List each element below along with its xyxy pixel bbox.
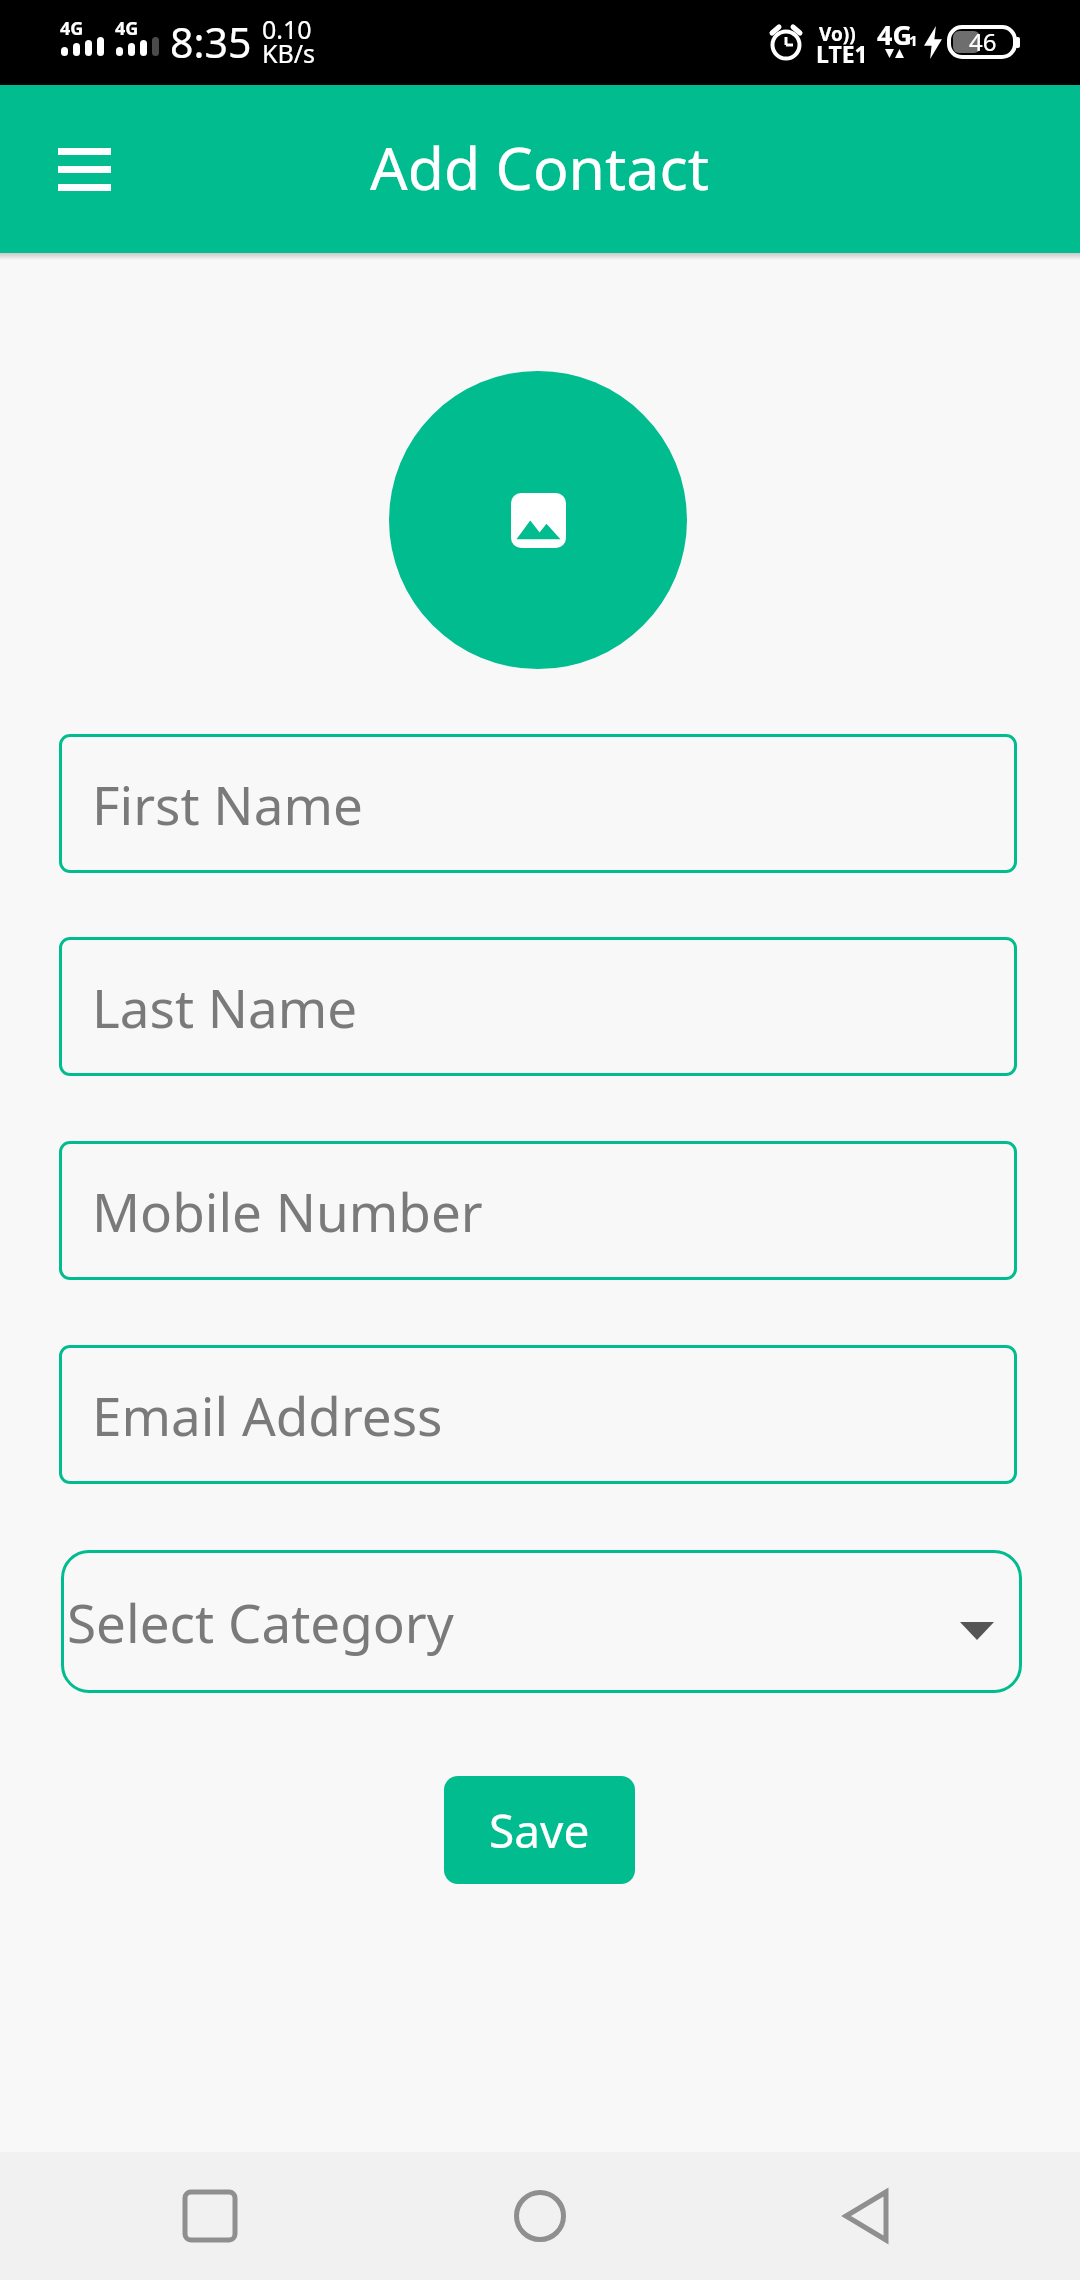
button[interactable]	[160, 2166, 260, 2266]
staticText: Mobile Number	[92, 1175, 483, 1247]
staticText: 46	[969, 25, 997, 58]
button[interactable]: First Name	[59, 734, 1017, 873]
button[interactable]: Email Address	[59, 1345, 1017, 1484]
staticText: First Name	[92, 768, 363, 840]
staticText: Vo))	[819, 21, 856, 47]
button[interactable]: Select Category	[61, 1550, 1022, 1693]
button[interactable]: Save	[444, 1776, 635, 1884]
button[interactable]	[815, 2166, 915, 2266]
staticText: 4G	[60, 16, 84, 41]
button[interactable]	[389, 371, 687, 669]
staticText: Add Contact	[370, 127, 710, 207]
staticText: LTE1	[816, 38, 868, 69]
staticText: Save	[489, 1799, 590, 1862]
staticText: Select Category	[67, 1586, 454, 1658]
staticText: 4G	[877, 16, 912, 53]
button[interactable]	[45, 134, 123, 204]
button[interactable]: Last Name	[59, 937, 1017, 1076]
button[interactable]	[490, 2166, 590, 2266]
staticText: 1	[909, 30, 918, 50]
staticText: 8:35	[170, 14, 252, 70]
staticText: KB/s	[262, 36, 316, 70]
staticText: Email Address	[92, 1379, 443, 1451]
button[interactable]: Mobile Number	[59, 1141, 1017, 1280]
staticText: 4G	[115, 16, 139, 41]
staticText: 0.10	[262, 12, 312, 46]
staticText: Last Name	[92, 971, 358, 1043]
